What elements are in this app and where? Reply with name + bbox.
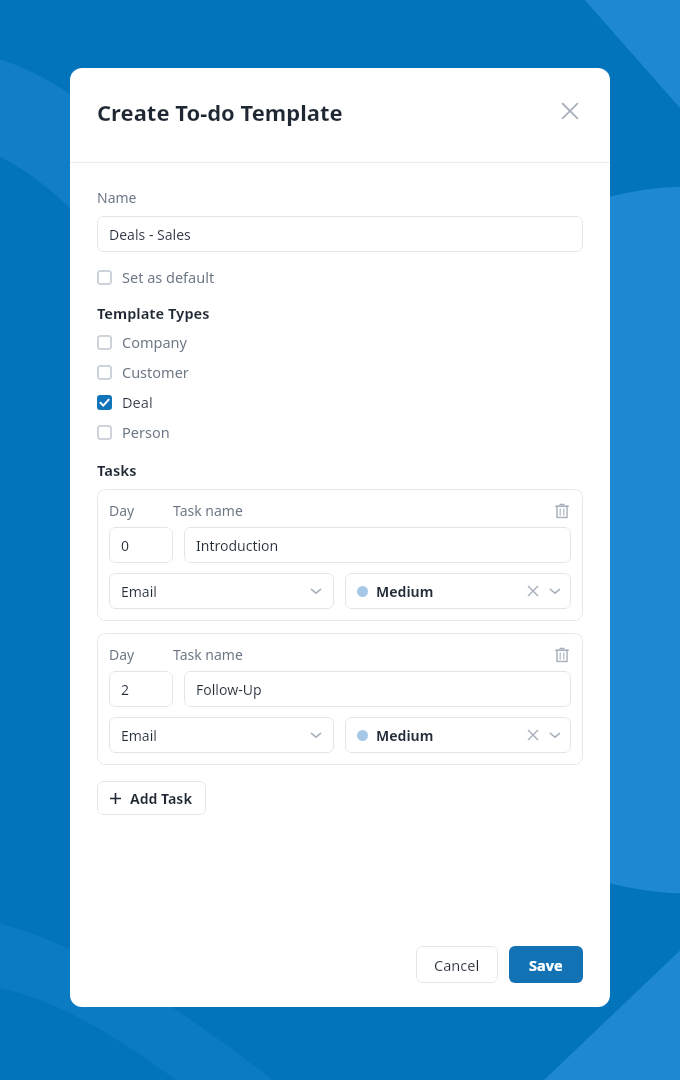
staticText: Email (121, 582, 157, 601)
button[interactable]: Follow-Up (184, 671, 571, 707)
button[interactable]: 2 (109, 671, 173, 707)
button[interactable]: Email (109, 717, 334, 753)
button[interactable]: Delete task (553, 646, 571, 664)
button[interactable]: Customer (97, 359, 189, 385)
staticText: Deal (122, 392, 153, 412)
staticText: Follow-Up (196, 680, 262, 699)
button[interactable]: Company (97, 329, 187, 355)
button[interactable]: Clear priority (527, 585, 539, 597)
button[interactable]: Introduction (184, 527, 571, 563)
staticText: Cancel (434, 955, 480, 975)
staticText: Deals - Sales (109, 225, 191, 244)
button[interactable]: Delete task (553, 502, 571, 520)
staticText: Introduction (196, 536, 279, 555)
staticText: Create To-do Template (97, 97, 343, 127)
staticText: Save (529, 955, 563, 975)
staticText: Customer (122, 362, 189, 382)
staticText: Email (121, 726, 157, 745)
staticText: 0 (121, 536, 130, 555)
button[interactable]: Close (557, 98, 583, 124)
button[interactable]: Medium (345, 717, 571, 753)
staticText: Day (109, 501, 135, 520)
staticText: Set as default (122, 267, 215, 287)
button[interactable]: Set as default (97, 264, 215, 290)
staticText: Template Types (97, 303, 210, 323)
staticText: Medium (376, 726, 434, 745)
staticText: Medium (376, 582, 434, 601)
button[interactable]: Cancel (416, 946, 498, 983)
button[interactable]: Save (509, 946, 583, 983)
staticText: Task name (173, 645, 243, 664)
staticText: Add Task (130, 789, 193, 808)
staticText: Day (109, 645, 135, 664)
staticText: Name (97, 188, 137, 207)
button[interactable]: Deals - Sales (97, 216, 583, 252)
staticText: Task name (173, 501, 243, 520)
button[interactable]: Email (109, 573, 334, 609)
button[interactable]: 0 (109, 527, 173, 563)
button[interactable]: Deal (97, 389, 153, 415)
button[interactable]: Person (97, 419, 170, 445)
button[interactable]: Clear priority (527, 729, 539, 741)
button[interactable]: Medium (345, 573, 571, 609)
staticText: 2 (121, 680, 130, 699)
button[interactable]: Add Task (97, 781, 206, 815)
staticText: Person (122, 422, 170, 442)
staticText: Company (122, 332, 187, 352)
staticText: Tasks (97, 460, 137, 480)
